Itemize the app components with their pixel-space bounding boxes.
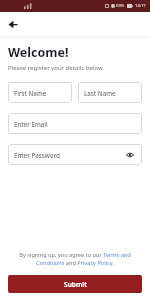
button[interactable]: Submit xyxy=(8,275,142,293)
button[interactable]: Toggle password visibility xyxy=(124,149,136,161)
button[interactable]: Enter Email xyxy=(8,113,142,134)
staticText: Welcome! xyxy=(8,44,69,61)
button[interactable]: Back xyxy=(5,16,21,32)
staticText: 14:17 xyxy=(135,3,146,9)
staticText: Enter Email xyxy=(14,120,48,128)
staticText: 59% xyxy=(116,3,125,9)
button[interactable]: Enter Password xyxy=(8,144,142,165)
staticText: Please register your details below. xyxy=(8,64,104,72)
staticText: Submit xyxy=(64,280,87,289)
staticText: Enter Password xyxy=(14,151,60,159)
staticText: By signing up, you agree to our Terms an… xyxy=(14,251,136,267)
button[interactable]: Last Name xyxy=(78,82,142,103)
button[interactable]: By signing up, you agree to our Terms an… xyxy=(14,251,136,267)
staticText: Last Name xyxy=(84,89,116,97)
staticText: First Name xyxy=(14,89,47,97)
button[interactable]: First Name xyxy=(8,82,72,103)
